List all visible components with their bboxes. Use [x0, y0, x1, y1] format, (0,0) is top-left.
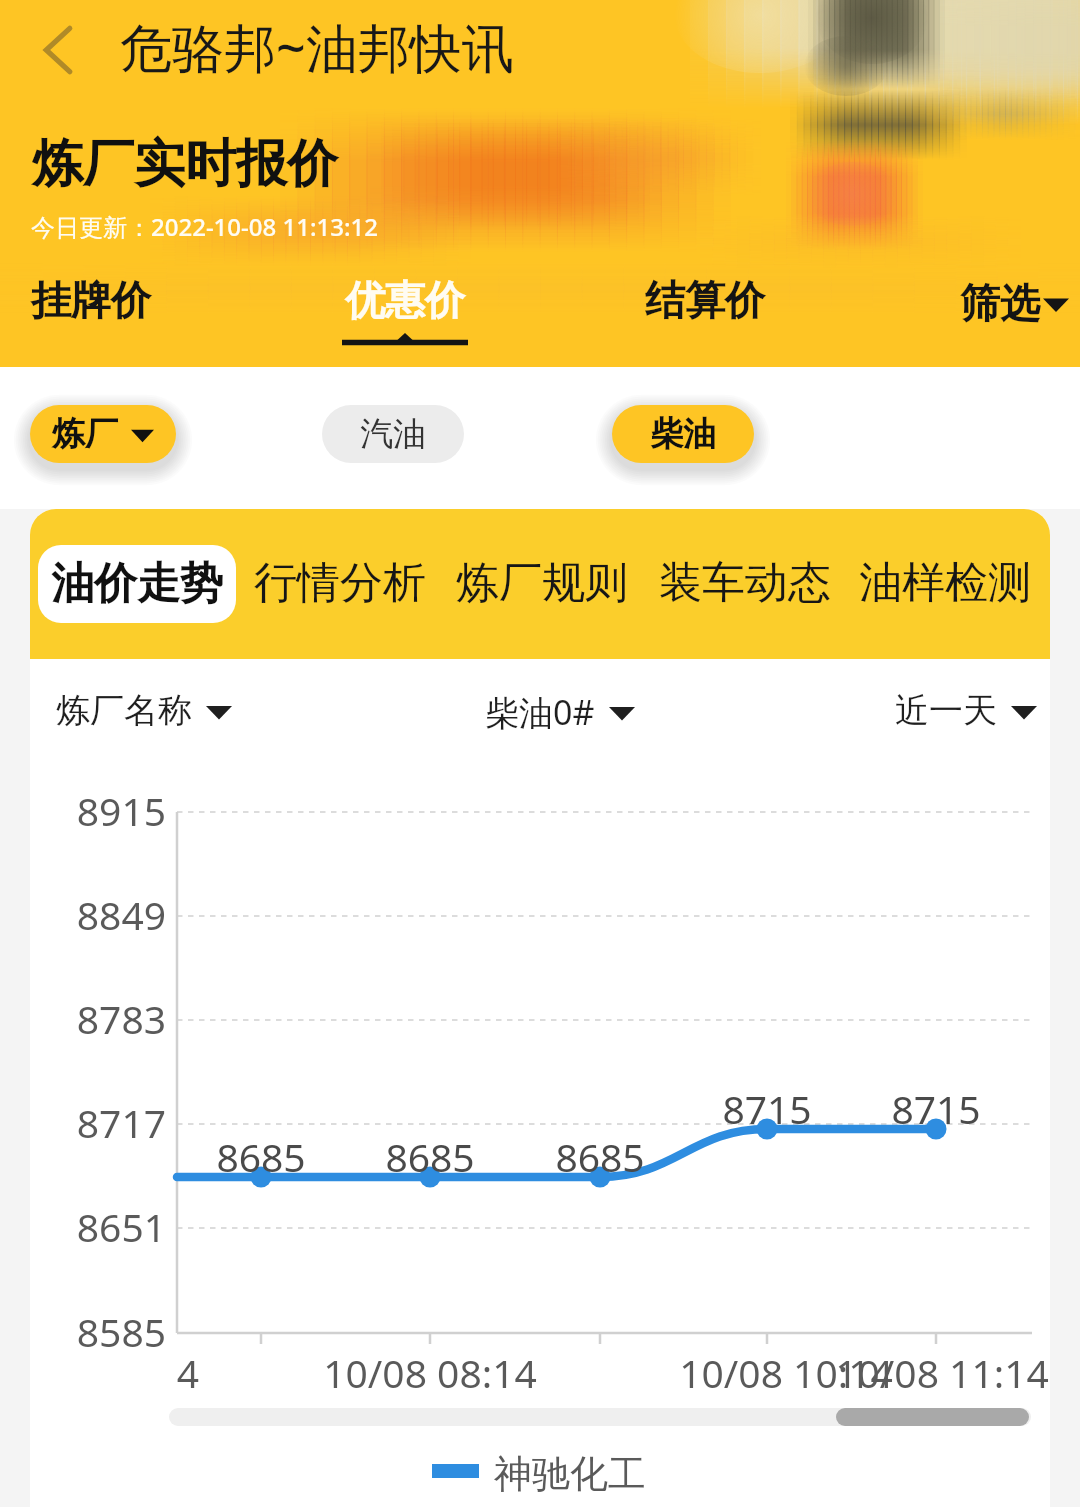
- staticText: 危骆邦~油邦快讯: [120, 11, 514, 82]
- staticText: 优惠价: [345, 275, 465, 325]
- staticText: 油价走势: [51, 557, 223, 611]
- button[interactable]: 汽油: [322, 405, 464, 463]
- staticText: 汽油: [360, 413, 426, 455]
- staticText: 筛选: [960, 278, 1040, 328]
- staticText: 炼厂名称: [56, 689, 192, 732]
- button[interactable]: 结算价: [633, 265, 777, 335]
- staticText: 8717: [46, 1096, 166, 1149]
- button[interactable]: 挂牌价: [19, 265, 163, 335]
- staticText: 4: [30, 1346, 348, 1399]
- staticText: 行情分析: [254, 556, 426, 610]
- button[interactable]: 炼厂名称: [56, 681, 232, 740]
- button[interactable]: 油样检测: [857, 547, 1033, 619]
- button[interactable]: 炼厂: [30, 405, 176, 463]
- staticText: 8849: [46, 888, 166, 941]
- staticText: 装车动态: [659, 556, 831, 610]
- staticText: 炼厂规则: [456, 556, 628, 610]
- button[interactable]: Back: [10, 2, 106, 98]
- staticText: 结算价: [645, 275, 765, 325]
- staticText: 柴油0#: [485, 689, 595, 735]
- button[interactable]: 柴油: [612, 405, 754, 463]
- staticText: 10/08 10:14: [626, 1346, 946, 1399]
- staticText: 8715: [697, 1082, 837, 1135]
- button[interactable]: 行情分析: [252, 547, 428, 619]
- button[interactable]: 柴油0#: [485, 681, 635, 743]
- staticText: 10/08 11:14: [782, 1346, 1050, 1399]
- staticText: 8685: [191, 1130, 331, 1183]
- staticText: 柴油: [650, 413, 716, 455]
- button[interactable]: 炼厂规则: [454, 547, 630, 619]
- staticText: 油样检测: [859, 556, 1031, 610]
- button[interactable]: 筛选: [944, 265, 1080, 341]
- staticText: 8651: [46, 1200, 166, 1253]
- staticText: 炼厂实时报价: [32, 132, 338, 196]
- button[interactable]: 油价走势: [38, 545, 236, 623]
- staticText: 8685: [360, 1130, 500, 1183]
- staticText: 挂牌价: [31, 275, 151, 325]
- button[interactable]: 优惠价: [329, 265, 481, 357]
- staticText: 8783: [46, 992, 166, 1045]
- staticText: 近一天: [895, 689, 997, 732]
- staticText: 10/08 08:14: [270, 1346, 590, 1399]
- staticText: 8715: [866, 1082, 1006, 1135]
- staticText: 8585: [46, 1305, 166, 1358]
- staticText: 炼厂: [52, 413, 118, 455]
- button[interactable]: 装车动态: [657, 547, 833, 619]
- staticText: 今日更新：2022-10-08 11:13:12: [31, 210, 378, 243]
- staticText: 8685: [530, 1130, 670, 1183]
- staticText: 神驰化工: [494, 1450, 646, 1498]
- staticText: 8915: [46, 784, 166, 837]
- button[interactable]: 近一天: [895, 681, 1037, 740]
